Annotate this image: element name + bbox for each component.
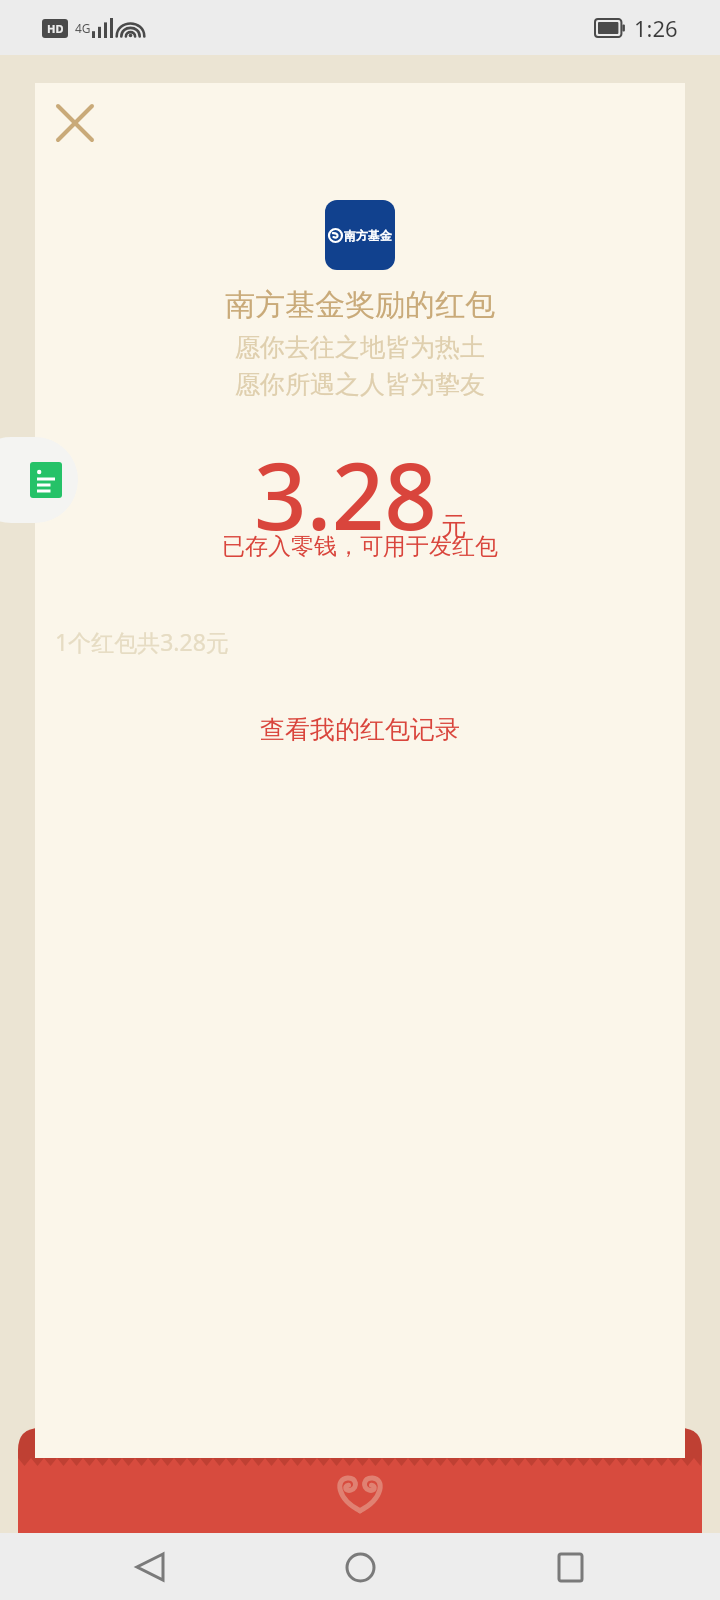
button[interactable]: Close xyxy=(49,97,101,149)
staticText: 3.28 xyxy=(254,432,437,557)
button[interactable]: Recents xyxy=(540,1537,600,1597)
staticText: 南方基金 xyxy=(344,228,392,243)
button[interactable]: Details xyxy=(0,437,78,523)
staticText: 1个红包共3.28元 xyxy=(55,626,229,657)
staticText: 南方基金奖励的红包 xyxy=(225,286,495,324)
button[interactable]: 查看我的红包记录 xyxy=(244,706,476,753)
staticText: 4G xyxy=(75,20,91,36)
staticText: 查看我的红包记录 xyxy=(260,714,460,745)
button[interactable]: Home xyxy=(330,1537,390,1597)
staticText: 愿你所遇之人皆为挚友 xyxy=(235,369,485,400)
button[interactable]: Back xyxy=(120,1537,180,1597)
staticText: HD xyxy=(47,21,64,36)
staticText: 元 xyxy=(441,510,467,543)
staticText: 愿你去往之地皆为热土 xyxy=(235,332,485,363)
staticText: 已存入零钱，可用于发红包 xyxy=(222,532,498,561)
staticText: 1:26 xyxy=(634,13,678,43)
